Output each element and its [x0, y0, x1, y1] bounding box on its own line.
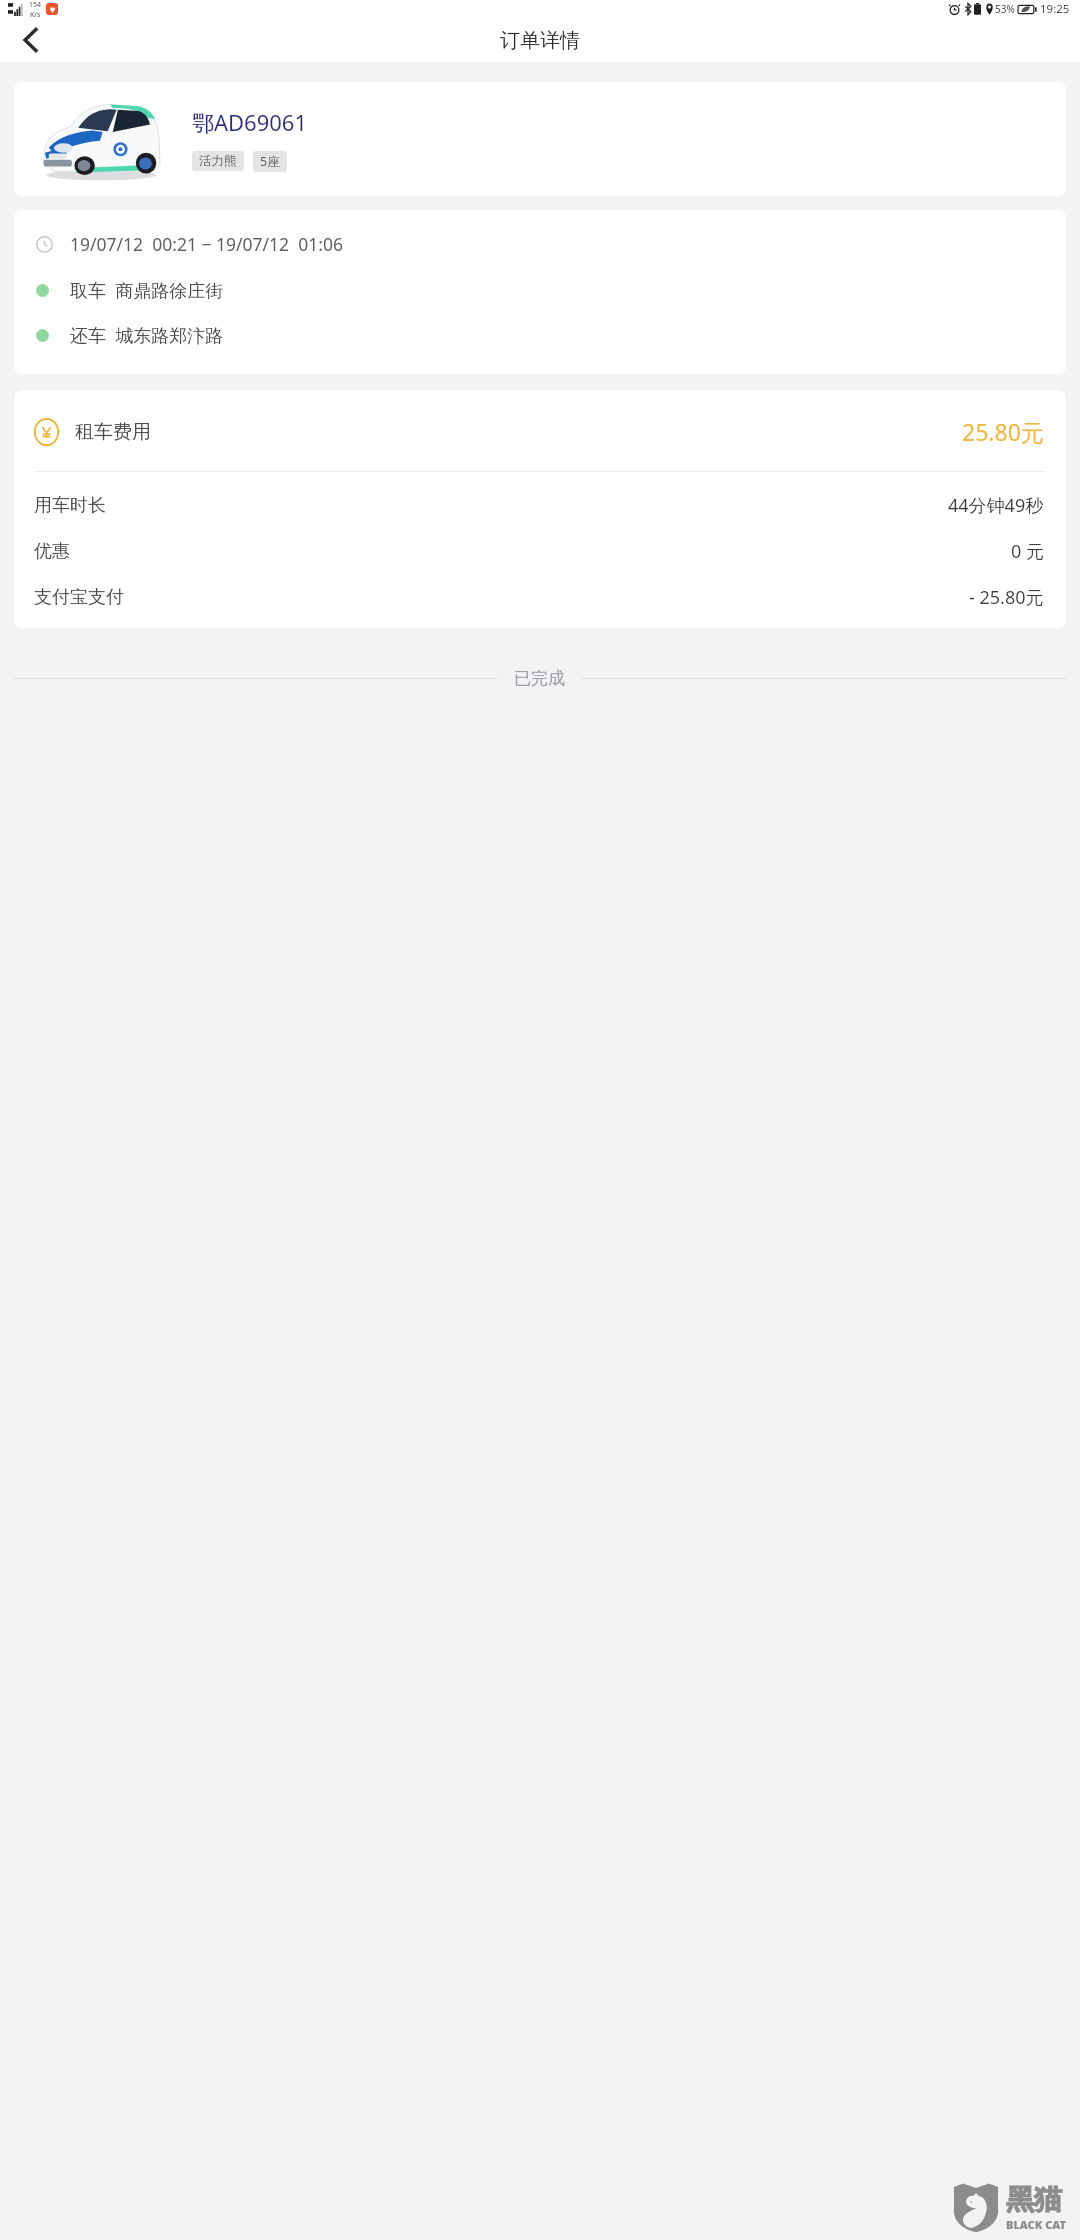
staticText: 黑猫	[1006, 2182, 1062, 2217]
staticText: 租车费用	[75, 420, 151, 444]
button[interactable]: 鄂AD69061	[14, 82, 1066, 196]
staticText: BLACK CAT	[1006, 2217, 1066, 2232]
staticText: 19/07/12 00:21 − 19/07/12 01:06	[70, 232, 343, 256]
staticText: 订单详情	[500, 28, 580, 53]
staticText: 25.80元	[962, 416, 1044, 447]
staticText: 44分钟49秒	[948, 493, 1044, 518]
staticText: 19:25	[1040, 1, 1070, 17]
staticText: 用车时长	[34, 494, 106, 517]
staticText: 优惠	[34, 540, 70, 563]
staticText: - 25.80元	[969, 585, 1044, 610]
staticText: 154	[29, 0, 42, 10]
staticText: 活力熊	[199, 153, 237, 169]
staticText: 5座	[260, 153, 280, 170]
staticText: 取车 商鼎路徐庄街	[70, 278, 224, 303]
button[interactable]: Back	[6, 18, 54, 62]
staticText: 已完成	[514, 668, 565, 689]
staticText: 53%	[995, 2, 1015, 16]
staticText: K/s	[30, 10, 41, 18]
staticText: 还车 城东路郑汴路	[70, 323, 224, 348]
staticText: 支付宝支付	[34, 586, 124, 609]
staticText: 0 元	[1011, 539, 1044, 564]
staticText: 鄂AD69061	[192, 107, 308, 137]
